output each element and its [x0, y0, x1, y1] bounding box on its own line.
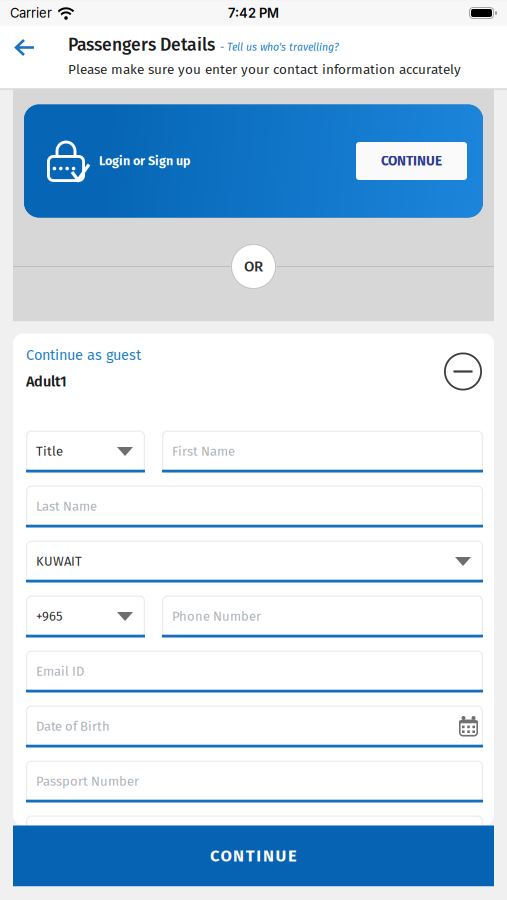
staticText: 7:42 PM — [228, 5, 279, 21]
staticText: Phone Number — [172, 609, 261, 624]
button[interactable]: KUWAIT — [26, 540, 483, 582]
staticText: Adult1 — [26, 373, 67, 390]
staticText: Passengers Details — [68, 34, 215, 55]
staticText: CONTINUE — [381, 153, 442, 169]
staticText: CONTINUE — [210, 846, 297, 866]
staticText: OR — [244, 257, 263, 275]
staticText: Email ID — [36, 664, 84, 679]
staticText: Title — [36, 444, 63, 459]
staticText: Date of Birth — [36, 719, 110, 734]
staticText: First Name — [172, 444, 235, 459]
button[interactable]: Title — [26, 430, 145, 472]
staticText: Login or Sign up — [99, 153, 190, 168]
button[interactable]: CONTINUE — [13, 825, 494, 886]
staticText: Continue as guest — [26, 346, 141, 364]
staticText: +965 — [36, 609, 63, 624]
button[interactable]: Collapse passenger details — [444, 352, 482, 390]
staticText: Carrier — [10, 5, 52, 21]
staticText: Last Name — [36, 499, 97, 514]
staticText: Passport Number — [36, 774, 139, 789]
staticText: - Tell us who's travelling? — [220, 41, 339, 54]
button[interactable]: +965 — [26, 595, 145, 637]
staticText: KUWAIT — [36, 554, 82, 569]
staticText: Please make sure you enter your contact … — [68, 61, 461, 78]
button[interactable]: Date of Birth — [26, 705, 483, 747]
button[interactable]: CONTINUE — [356, 142, 467, 180]
button[interactable]: Back — [0, 25, 36, 56]
